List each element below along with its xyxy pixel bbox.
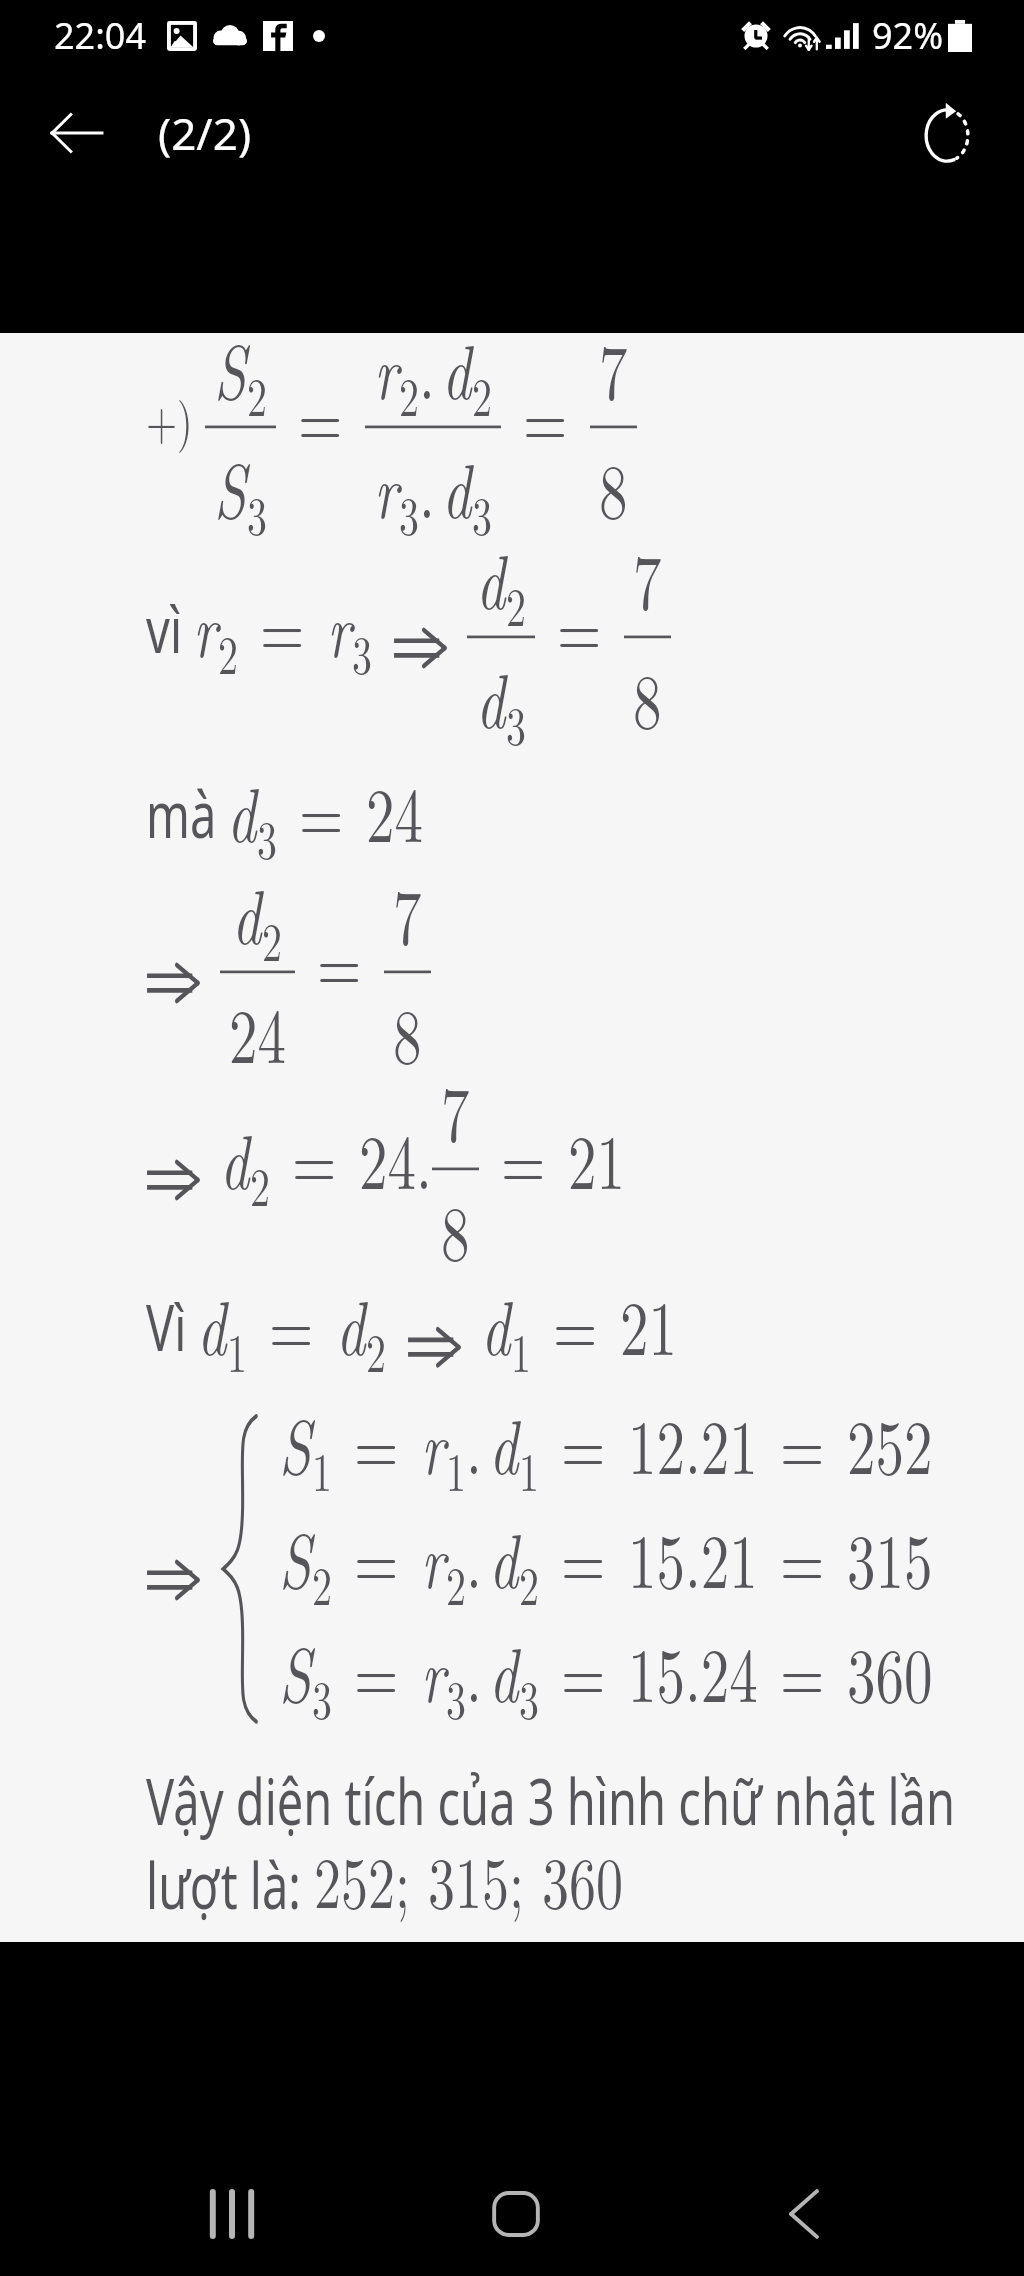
staticText: S bbox=[279, 1502, 312, 1610]
staticText: 1 bbox=[227, 1312, 247, 1388]
staticText: 7 bbox=[633, 523, 662, 631]
staticText: = bbox=[780, 1388, 825, 1496]
staticText: 24 bbox=[366, 756, 423, 864]
staticText: d bbox=[220, 1103, 250, 1212]
staticText: = bbox=[298, 361, 343, 470]
staticText: S bbox=[214, 313, 247, 421]
staticText: 3 bbox=[312, 1659, 332, 1735]
staticText: 3 bbox=[257, 799, 277, 875]
staticText: (2/2) bbox=[158, 103, 252, 163]
staticText: r bbox=[374, 432, 399, 541]
staticText: r bbox=[374, 313, 399, 421]
staticText: +) bbox=[146, 380, 193, 456]
staticText: 2 bbox=[519, 1545, 539, 1621]
staticText: 252 bbox=[847, 1388, 933, 1496]
staticText: 7 bbox=[393, 858, 422, 966]
staticText: = bbox=[501, 1103, 546, 1212]
staticText: 1 bbox=[446, 1431, 466, 1507]
staticText: r bbox=[327, 571, 352, 680]
staticText: 2 bbox=[446, 1545, 466, 1621]
button[interactable]: Solution image page 2 of 2 bbox=[0, 333, 1024, 1942]
staticText: 2 bbox=[312, 1545, 332, 1621]
staticText: Vậy diện tích của 3 hình chữ nhật lần bbox=[146, 1758, 956, 1844]
staticText: 2 bbox=[262, 901, 282, 977]
staticText: S bbox=[279, 1388, 312, 1496]
staticText: 2 bbox=[366, 1312, 386, 1388]
staticText: 3 bbox=[519, 1659, 539, 1735]
staticText: 8 bbox=[441, 1174, 470, 1283]
staticText: d bbox=[476, 642, 506, 751]
staticText: 3 bbox=[247, 475, 267, 551]
staticText: 2 bbox=[218, 614, 238, 690]
staticText: 21 bbox=[568, 1103, 625, 1212]
staticText: 12.21 bbox=[628, 1388, 758, 1496]
button[interactable]: Recent apps bbox=[172, 2154, 292, 2274]
staticText: = bbox=[354, 1388, 399, 1496]
staticText: 15.24 bbox=[628, 1616, 758, 1724]
staticText: 2 bbox=[506, 566, 526, 642]
staticText: 2 bbox=[399, 356, 419, 432]
staticText: = bbox=[553, 1269, 598, 1377]
staticText: . bbox=[419, 432, 435, 541]
staticText: d bbox=[442, 432, 472, 541]
staticText: 22:04 bbox=[54, 11, 147, 60]
staticText: 24 bbox=[229, 977, 286, 1086]
staticText: = bbox=[260, 571, 305, 680]
staticText: = bbox=[292, 1103, 337, 1212]
staticText: 3 bbox=[472, 475, 492, 551]
staticText: d bbox=[232, 858, 262, 966]
staticText: S bbox=[214, 432, 247, 541]
staticText: 3 bbox=[446, 1659, 466, 1735]
staticText: mà bbox=[146, 771, 217, 856]
staticText: = bbox=[780, 1502, 825, 1610]
staticText: = bbox=[780, 1616, 825, 1724]
staticText: = bbox=[561, 1616, 606, 1724]
staticText: 8 bbox=[393, 977, 422, 1086]
staticText: . bbox=[419, 313, 435, 421]
staticText: = bbox=[561, 1502, 606, 1610]
staticText: = bbox=[317, 906, 362, 1015]
staticText: . bbox=[466, 1388, 482, 1496]
staticText: 315 bbox=[847, 1502, 933, 1610]
staticText: Vì bbox=[146, 1284, 187, 1369]
staticText: d bbox=[442, 313, 472, 421]
staticText: = bbox=[561, 1388, 606, 1496]
staticText: = bbox=[354, 1502, 399, 1610]
staticText: d bbox=[481, 1269, 511, 1377]
staticText: d bbox=[489, 1502, 519, 1610]
staticText: d bbox=[336, 1269, 366, 1377]
staticText: 92% bbox=[872, 11, 944, 60]
staticText: 2 bbox=[247, 356, 267, 432]
staticText: 8 bbox=[599, 432, 628, 541]
staticText: 7 bbox=[441, 1055, 470, 1163]
button[interactable]: Rotate bbox=[899, 85, 995, 181]
staticText: . bbox=[466, 1616, 482, 1724]
staticText: d bbox=[476, 523, 506, 631]
staticText: 3 bbox=[399, 475, 419, 551]
staticText: = bbox=[557, 571, 602, 680]
staticText: 1 bbox=[519, 1431, 539, 1507]
staticText: 3 bbox=[352, 614, 372, 690]
staticText: r bbox=[421, 1388, 446, 1496]
button[interactable]: Back bbox=[744, 2154, 864, 2274]
staticText: r bbox=[421, 1616, 446, 1724]
staticText: d bbox=[489, 1388, 519, 1496]
staticText: = bbox=[299, 756, 344, 864]
staticText: 24. bbox=[359, 1103, 432, 1212]
staticText: 1 bbox=[511, 1312, 531, 1388]
staticText: 252; 315; 360 bbox=[314, 1826, 623, 1929]
staticText: 2 bbox=[472, 356, 492, 432]
staticText: lượt là: bbox=[146, 1842, 314, 1928]
staticText: 360 bbox=[847, 1616, 933, 1724]
staticText: 15.21 bbox=[628, 1502, 758, 1610]
staticText: 3 bbox=[506, 685, 526, 761]
button[interactable]: Home bbox=[456, 2154, 576, 2274]
staticText: 7 bbox=[599, 313, 628, 421]
staticText: r bbox=[421, 1502, 446, 1610]
staticText: S bbox=[279, 1616, 312, 1724]
staticText: = bbox=[523, 361, 568, 470]
staticText: 2 bbox=[250, 1146, 270, 1222]
staticText: = bbox=[269, 1269, 314, 1377]
staticText: . bbox=[466, 1502, 482, 1610]
button[interactable]: Back bbox=[28, 85, 124, 181]
